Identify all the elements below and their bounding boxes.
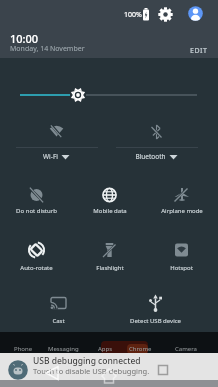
button[interactable]: Flashlight: [73, 237, 146, 277]
staticText: Do not disturb: [16, 207, 57, 215]
button[interactable]: [12, 84, 206, 106]
staticText: Hotspot: [170, 264, 193, 272]
button[interactable]: [0, 353, 218, 380]
staticText: EDIT: [190, 46, 208, 56]
button[interactable]: [188, 6, 203, 21]
staticText: Apps: [98, 345, 113, 353]
staticText: USB debugging connected: [33, 355, 141, 367]
staticText: Phone: [14, 345, 33, 353]
button[interactable]: Wi-Fi: [8, 112, 105, 164]
staticText: Messaging: [48, 345, 79, 353]
button[interactable]: Bluetooth: [108, 112, 205, 164]
staticText: Camera: [175, 345, 197, 353]
button[interactable]: Do not disturb: [0, 178, 73, 218]
button[interactable]: Detect USB device: [107, 290, 204, 328]
staticText: Bluetooth: [135, 152, 166, 161]
staticText: Mobile data: [93, 207, 127, 215]
button[interactable]: Mobile data: [73, 178, 146, 218]
staticText: Auto-rotate: [20, 264, 53, 272]
staticText: 10:00: [10, 31, 39, 46]
staticText: Chrome: [129, 345, 152, 353]
staticText: Airplane mode: [161, 207, 203, 215]
staticText: Cast: [52, 317, 65, 325]
staticText: Detect USB device: [130, 317, 181, 325]
button[interactable]: [157, 6, 174, 23]
staticText: Touch to disable USB debugging.: [33, 366, 150, 376]
button[interactable]: Auto-rotate: [0, 237, 73, 277]
staticText: Wi-Fi: [43, 152, 58, 161]
button[interactable]: Airplane mode: [145, 178, 218, 218]
button[interactable]: Cast: [10, 290, 107, 328]
staticText: Monday, 14 November: [10, 44, 85, 54]
button[interactable]: Hotspot: [145, 237, 218, 277]
button[interactable]: EDIT: [183, 43, 215, 59]
staticText: Flashlight: [96, 264, 124, 272]
staticText: 100%: [124, 10, 142, 20]
